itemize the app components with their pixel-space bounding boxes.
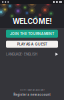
- staticText: Register a new account: [13, 93, 50, 96]
- staticText: Don't have an account?: [19, 89, 44, 92]
- button[interactable]: JOIN THE TOURNAMENT: [6, 30, 58, 38]
- button[interactable]: Register a new account: [13, 93, 50, 96]
- staticText: JOIN THE TOURNAMENT: [10, 32, 54, 36]
- button[interactable]: LANGUAGE: ENGLISH: [0, 52, 64, 57]
- button[interactable]: PLAY AS A GUEST: [6, 41, 58, 48]
- staticText: PLAY AS A GUEST: [17, 42, 47, 46]
- staticText: WELCOME!: [12, 17, 51, 26]
- staticText: LANGUAGE: ENGLISH: [6, 52, 37, 56]
